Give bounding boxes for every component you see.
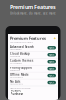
button[interactable]: Get <box>47 53 56 56</box>
staticText: Cloud Backup <box>10 52 30 55</box>
staticText: Priority Support <box>10 66 32 69</box>
staticText: No Ads <box>10 80 20 83</box>
button[interactable]: Get <box>47 60 56 63</box>
button[interactable]: Cloud Backup <box>8 51 58 58</box>
staticText: Find anything fast <box>10 49 21 50</box>
button[interactable]: Priority Support <box>8 65 58 72</box>
staticText: Custom Themes <box>10 59 33 62</box>
staticText: Get <box>49 74 54 77</box>
button[interactable]: Advanced Search <box>8 44 58 51</box>
staticText: Personalize look <box>10 63 22 64</box>
button[interactable]: Get <box>47 67 56 70</box>
staticText: Clean experience <box>10 83 23 85</box>
staticText: Get help quickly <box>10 70 20 71</box>
staticText: ✦ <box>53 36 56 40</box>
button[interactable]: Custom Themes <box>8 58 58 65</box>
staticText: Get <box>49 53 54 56</box>
button[interactable]: Restore Purchase <box>10 90 24 94</box>
staticText: Get <box>49 81 54 84</box>
staticText: Get <box>49 67 54 70</box>
button[interactable]: Offline Mode <box>8 72 58 79</box>
button[interactable]: No Ads <box>8 79 58 86</box>
staticText: Offline Mode <box>10 73 29 76</box>
staticText: Get <box>49 60 54 63</box>
button[interactable]: Get <box>47 46 56 49</box>
button[interactable]: Get <box>47 81 56 84</box>
button[interactable]: Get <box>47 74 56 77</box>
staticText: Unlock more, do more, see more <box>10 12 56 15</box>
staticText: Advanced Search <box>10 45 34 49</box>
staticText: Works anywhere <box>10 76 23 78</box>
staticText: Premium Features <box>10 3 56 11</box>
staticText: Keep data safe <box>10 56 20 57</box>
staticText: Upgrade to unlock every feature <box>10 41 33 43</box>
staticText: Restore Purchase <box>10 89 23 96</box>
staticText: Get <box>49 46 54 49</box>
staticText: All plans include a 7-day free trial <box>10 88 30 89</box>
staticText: Premium Features <box>10 36 46 41</box>
